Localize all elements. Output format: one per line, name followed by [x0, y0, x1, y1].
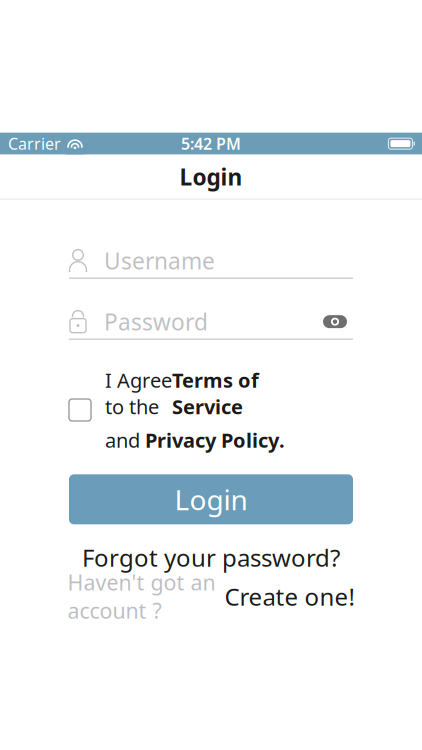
- staticText: Username: [104, 246, 215, 276]
- staticText: 5:42 PM: [181, 133, 241, 154]
- button[interactable]: Agree to terms: [69, 399, 91, 421]
- staticText: Terms of Service: [172, 367, 259, 420]
- staticText: and: [105, 427, 145, 453]
- button[interactable]: Privacy Policy.: [145, 427, 285, 453]
- staticText: Haven't got an account ?: [67, 568, 215, 625]
- button[interactable]: Login: [69, 474, 353, 524]
- staticText: Forgot your password?: [82, 541, 340, 573]
- button[interactable]: Show password: [317, 307, 353, 337]
- staticText: Privacy Policy.: [145, 427, 285, 453]
- button[interactable]: Terms of Service: [172, 367, 259, 420]
- staticText: Create one!: [224, 580, 354, 612]
- staticText: Carrier: [8, 133, 61, 154]
- button[interactable]: Haven't got an account ?: [61, 583, 361, 609]
- staticText: Login: [174, 481, 247, 518]
- staticText: I Agree to the: [105, 367, 172, 420]
- staticText: Password: [104, 307, 208, 337]
- staticText: Login: [179, 162, 242, 192]
- button[interactable]: Forgot your password?: [69, 545, 353, 569]
